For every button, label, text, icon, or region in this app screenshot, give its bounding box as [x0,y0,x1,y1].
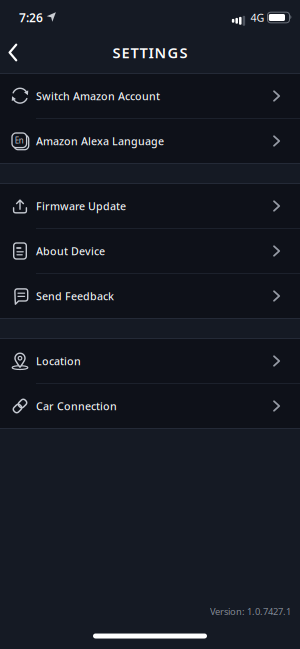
staticText: En [15,135,24,146]
staticText: 4G [250,10,264,25]
staticText: Version: 1.0.7427.1 [210,605,291,617]
staticText: Switch Amazon Account [36,89,160,103]
staticText: About Device [36,244,105,258]
button[interactable]: About Device [0,229,300,273]
staticText: Car Connection [36,399,117,413]
button[interactable]: Back [0,32,30,73]
staticText: Firmware Update [36,199,126,213]
button[interactable]: Car Connection [0,384,300,428]
staticText: 7:26 [19,9,43,25]
button[interactable]: Switch Amazon Account [0,74,300,118]
staticText: Send Feedback [36,289,114,303]
button[interactable]: En [0,119,300,163]
staticText: Location [36,354,81,368]
button[interactable]: Firmware Update [0,184,300,228]
button[interactable]: Location [0,339,300,383]
button[interactable]: Send Feedback [0,274,300,318]
staticText: Amazon Alexa Language [36,134,164,148]
staticText: S E T T I N G S [112,43,187,62]
